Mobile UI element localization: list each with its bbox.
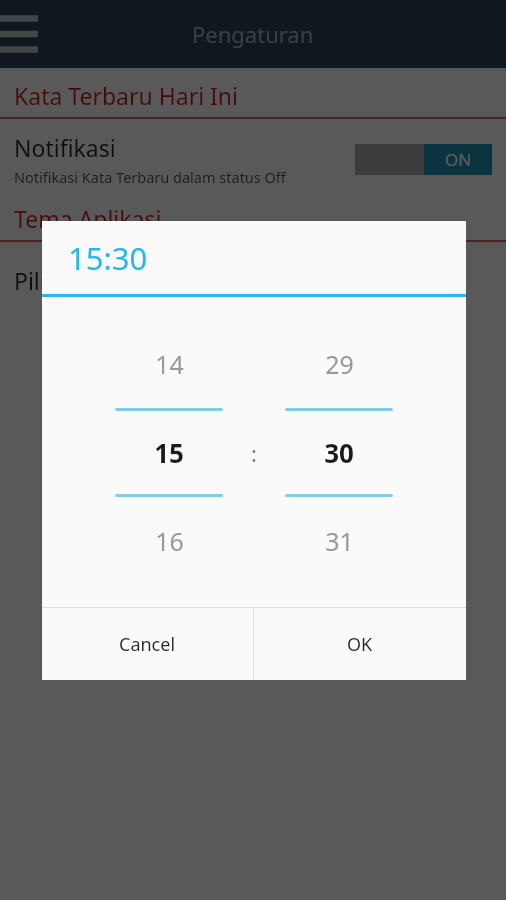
- button[interactable]: ON: [355, 144, 492, 175]
- staticText: ON: [445, 148, 472, 171]
- staticText: Cancel: [119, 632, 176, 657]
- button[interactable]: Cancel: [42, 608, 253, 680]
- button[interactable]: Open navigation menu: [0, 9, 52, 59]
- staticText: Kata Terbaru Hari Ini: [14, 80, 239, 111]
- staticText: OK: [347, 632, 373, 657]
- button[interactable]: Notifikasi: [0, 119, 506, 199]
- staticText: Tema Aplikasi: [14, 203, 162, 234]
- staticText: 30: [324, 435, 354, 470]
- staticText: Pilih Waktu: [14, 265, 135, 296]
- staticText: 15:30: [68, 237, 148, 279]
- button[interactable]: OK: [254, 608, 466, 680]
- button[interactable]: 29: [285, 347, 393, 558]
- staticText: 14: [155, 347, 184, 381]
- button[interactable]: 14: [115, 347, 223, 558]
- staticText: 15: [154, 435, 184, 470]
- staticText: :: [251, 438, 257, 468]
- staticText: Notifikasi: [14, 132, 116, 163]
- staticText: Notifikasi Kata Terbaru dalam status Off: [14, 167, 286, 187]
- staticText: 29: [325, 347, 354, 381]
- button[interactable]: Pilih Waktu: [0, 242, 506, 318]
- staticText: 31: [325, 524, 354, 558]
- staticText: 16: [155, 524, 184, 558]
- staticText: Pengaturan: [192, 19, 314, 49]
